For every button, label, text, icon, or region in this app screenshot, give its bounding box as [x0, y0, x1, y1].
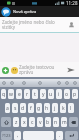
- button[interactable]: u: [48, 89, 54, 99]
- button[interactable]: Emoji: [10, 66, 18, 74]
- button[interactable]: t: [32, 89, 38, 99]
- staticText: t: [34, 91, 36, 98]
- staticText: j: [54, 105, 56, 112]
- button[interactable]: c: [29, 117, 35, 127]
- staticText: Nová zpráva: [13, 9, 37, 14]
- button[interactable]: enter: [65, 131, 78, 140]
- staticText: o: [65, 91, 69, 98]
- staticText: i: [58, 91, 60, 98]
- button[interactable]: l: [68, 103, 74, 113]
- staticText: y: [42, 91, 45, 98]
- staticText: p: [73, 91, 77, 98]
- staticText: g: [37, 105, 41, 112]
- button[interactable]: Attach: [1, 66, 9, 74]
- button[interactable]: k: [60, 103, 66, 113]
- button[interactable]: h: [44, 103, 50, 113]
- staticText: z: [15, 119, 18, 126]
- staticText: Zadejte textovou zprávu: [19, 64, 64, 76]
- button[interactable]: q: [1, 89, 6, 99]
- button[interactable]: ?123: [1, 131, 12, 140]
- button[interactable]: x: [21, 117, 27, 127]
- staticText: n: [54, 119, 58, 126]
- staticText: h: [45, 105, 49, 112]
- button[interactable]: .: [56, 131, 63, 140]
- staticText: c: [31, 119, 34, 126]
- button[interactable]: shift: [1, 117, 11, 127]
- button[interactable]: b: [45, 117, 51, 127]
- staticText: s: [14, 105, 17, 112]
- button[interactable]: ,: [14, 131, 21, 140]
- button[interactable]: w: [8, 89, 14, 99]
- button[interactable]: Add contact: [63, 17, 79, 33]
- button[interactable]: e: [16, 89, 22, 99]
- staticText: v: [39, 119, 42, 126]
- button[interactable]: Settings: [9, 79, 15, 87]
- staticText: a: [6, 105, 9, 112]
- button[interactable]: y: [40, 89, 46, 99]
- button[interactable]: [23, 131, 54, 140]
- button[interactable]: n: [53, 117, 59, 127]
- button[interactable]: Google voice typing: [1, 79, 7, 87]
- button[interactable]: f: [28, 103, 34, 113]
- staticText: d: [21, 105, 25, 112]
- staticText: w: [9, 91, 13, 98]
- button[interactable]: j: [52, 103, 58, 113]
- staticText: b: [46, 119, 50, 126]
- button[interactable]: Back: [1, 7, 11, 17]
- staticText: ,: [17, 132, 19, 139]
- staticText: Zadejte jméno nebo číslo vizitky: [2, 19, 63, 31]
- button[interactable]: g: [36, 103, 42, 113]
- button[interactable]: z: [13, 117, 19, 127]
- button[interactable]: v: [37, 117, 43, 127]
- button[interactable]: Emoji: [21, 79, 27, 87]
- staticText: u: [49, 91, 53, 98]
- button[interactable]: o: [64, 89, 70, 99]
- staticText: 11:28: [66, 0, 78, 6]
- button[interactable]: Send: [64, 63, 78, 77]
- button[interactable]: d: [20, 103, 26, 113]
- button[interactable]: More options: [64, 79, 70, 87]
- staticText: q: [2, 91, 6, 98]
- staticText: k: [62, 105, 65, 112]
- button[interactable]: a: [5, 103, 10, 113]
- staticText: ?123: [2, 133, 11, 138]
- staticText: f: [30, 105, 32, 112]
- button[interactable]: m: [61, 117, 67, 127]
- staticText: x: [23, 119, 26, 126]
- button[interactable]: i: [56, 89, 62, 99]
- button[interactable]: r: [24, 89, 30, 99]
- button[interactable]: Clipboard: [37, 79, 43, 87]
- button[interactable]: s: [12, 103, 18, 113]
- staticText: e: [18, 91, 21, 98]
- button[interactable]: Theme: [56, 79, 62, 87]
- button[interactable]: Close keyboard: [72, 79, 78, 87]
- button[interactable]: p: [72, 89, 78, 99]
- staticText: r: [26, 91, 29, 98]
- staticText: m: [62, 119, 67, 126]
- staticText: .: [59, 132, 61, 139]
- staticText: l: [70, 105, 72, 112]
- button[interactable]: delete: [69, 117, 78, 127]
